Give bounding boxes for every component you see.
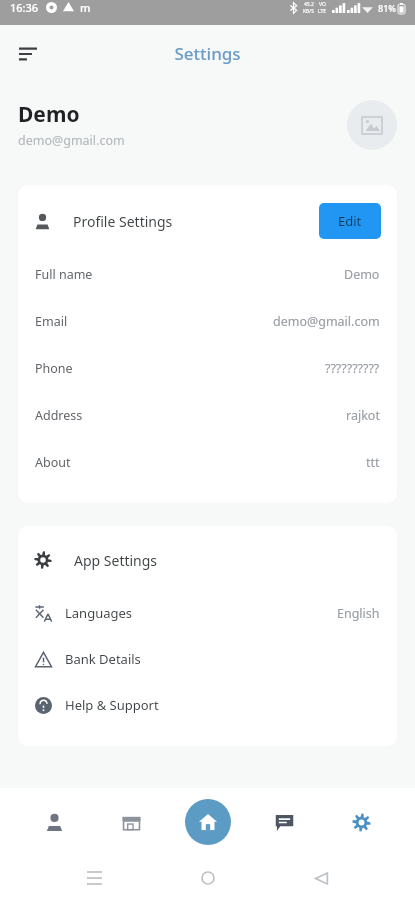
staticText: LTE [318, 8, 327, 15]
staticText: Settings [174, 42, 241, 65]
staticText: Address [35, 407, 83, 424]
button[interactable]: Profile photo [347, 100, 397, 150]
button[interactable]: Store [108, 799, 154, 845]
staticText: 81% [378, 2, 396, 14]
staticText: Help & Support [65, 696, 159, 714]
staticText: About [35, 454, 71, 471]
staticText: m [80, 0, 91, 15]
button[interactable]: Bank Details [18, 636, 397, 682]
button[interactable]: Profile Settings [18, 199, 397, 243]
button[interactable]: Languages [18, 590, 397, 636]
button[interactable]: Phone [18, 345, 397, 392]
button[interactable]: Back [301, 858, 341, 898]
button[interactable]: Messages [261, 799, 307, 845]
staticText: 45.2 [304, 1, 314, 8]
staticText: rajkot [346, 407, 380, 424]
staticText: Email [35, 313, 68, 330]
staticText: KB/S [303, 8, 314, 15]
button[interactable]: Full name [18, 251, 397, 298]
staticText: ?????????? [325, 360, 380, 377]
staticText: App Settings [74, 551, 158, 570]
button[interactable]: Home [185, 799, 231, 845]
button[interactable]: Settings [338, 799, 384, 845]
staticText: ttt [366, 454, 380, 471]
staticText: Demo [18, 100, 80, 129]
staticText: Bank Details [65, 650, 141, 668]
button[interactable]: Home [188, 858, 228, 898]
button[interactable]: Edit [319, 203, 381, 239]
staticText: Full name [35, 266, 93, 283]
staticText: 16:36 [10, 0, 39, 15]
staticText: English [337, 605, 380, 622]
button[interactable]: App Settings [18, 538, 397, 582]
staticText: demo@gmail.com [18, 132, 125, 149]
button[interactable]: About [18, 439, 397, 486]
staticText: Profile Settings [73, 212, 173, 231]
button[interactable]: Address [18, 392, 397, 439]
staticText: Edit [338, 212, 362, 230]
button[interactable]: Recents [74, 858, 114, 898]
staticText: Demo [344, 266, 380, 283]
staticText: demo@gmail.com [273, 313, 380, 330]
button[interactable]: Help & Support [18, 682, 397, 728]
button[interactable]: Profile [31, 799, 77, 845]
button[interactable]: Email [18, 298, 397, 345]
staticText: VO [319, 1, 326, 8]
staticText: Phone [35, 360, 73, 377]
staticText: Languages [65, 604, 133, 622]
button[interactable]: Menu [8, 34, 48, 74]
